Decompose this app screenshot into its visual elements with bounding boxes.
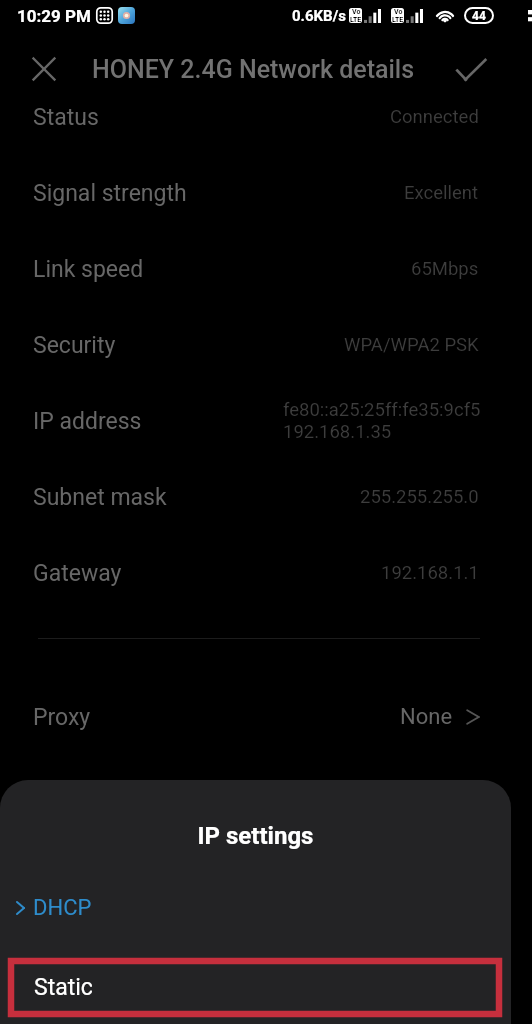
staticText: Status [33, 104, 99, 131]
staticText: Excellent [404, 182, 479, 204]
button[interactable]: Link speed [0, 231, 511, 307]
button[interactable]: Proxy [0, 689, 511, 745]
button[interactable]: Signal strength [0, 155, 511, 231]
staticText: 192.168.1.35 [283, 421, 392, 443]
staticText: IP address [33, 408, 142, 435]
staticText: Link speed [33, 256, 144, 283]
staticText: None [400, 704, 453, 730]
staticText: Connected [390, 106, 479, 128]
staticText: Security [33, 332, 116, 359]
staticText: WPA/WPA2 PSK [344, 334, 479, 356]
staticText: 0.6KB/s [292, 7, 346, 25]
button[interactable]: IP address [0, 383, 511, 459]
staticText: IP settings [0, 822, 511, 850]
button[interactable]: Security [0, 307, 511, 383]
staticText: Subnet mask [33, 484, 167, 511]
staticText: Proxy [33, 704, 91, 731]
staticText: 255.255.255.0 [360, 486, 479, 508]
button[interactable]: Close [16, 41, 72, 97]
staticText: Static [34, 974, 93, 1001]
button[interactable]: Save [443, 42, 499, 98]
button[interactable]: Subnet mask [0, 459, 511, 535]
staticText: fe80::a25:25ff:fe35:9cf5 [283, 399, 481, 421]
button[interactable]: Gateway [0, 535, 511, 611]
staticText: 10:29 PM [17, 6, 91, 26]
button[interactable]: Static [8, 958, 502, 1017]
staticText: LTE [350, 16, 362, 23]
staticText: Vo [394, 8, 403, 16]
staticText: 44 [472, 9, 486, 23]
staticText: Gateway [33, 560, 122, 587]
staticText: LTE [392, 16, 404, 23]
staticText: HONEY 2.4G Network details [92, 55, 415, 84]
staticText: Signal strength [33, 180, 187, 207]
staticText: 65Mbps [411, 258, 479, 280]
button[interactable]: DHCP [0, 881, 511, 935]
staticText: 192.168.1.1 [381, 562, 479, 584]
staticText: DHCP [33, 895, 92, 921]
staticText: Vo [352, 8, 361, 16]
button[interactable]: Status [0, 79, 511, 155]
